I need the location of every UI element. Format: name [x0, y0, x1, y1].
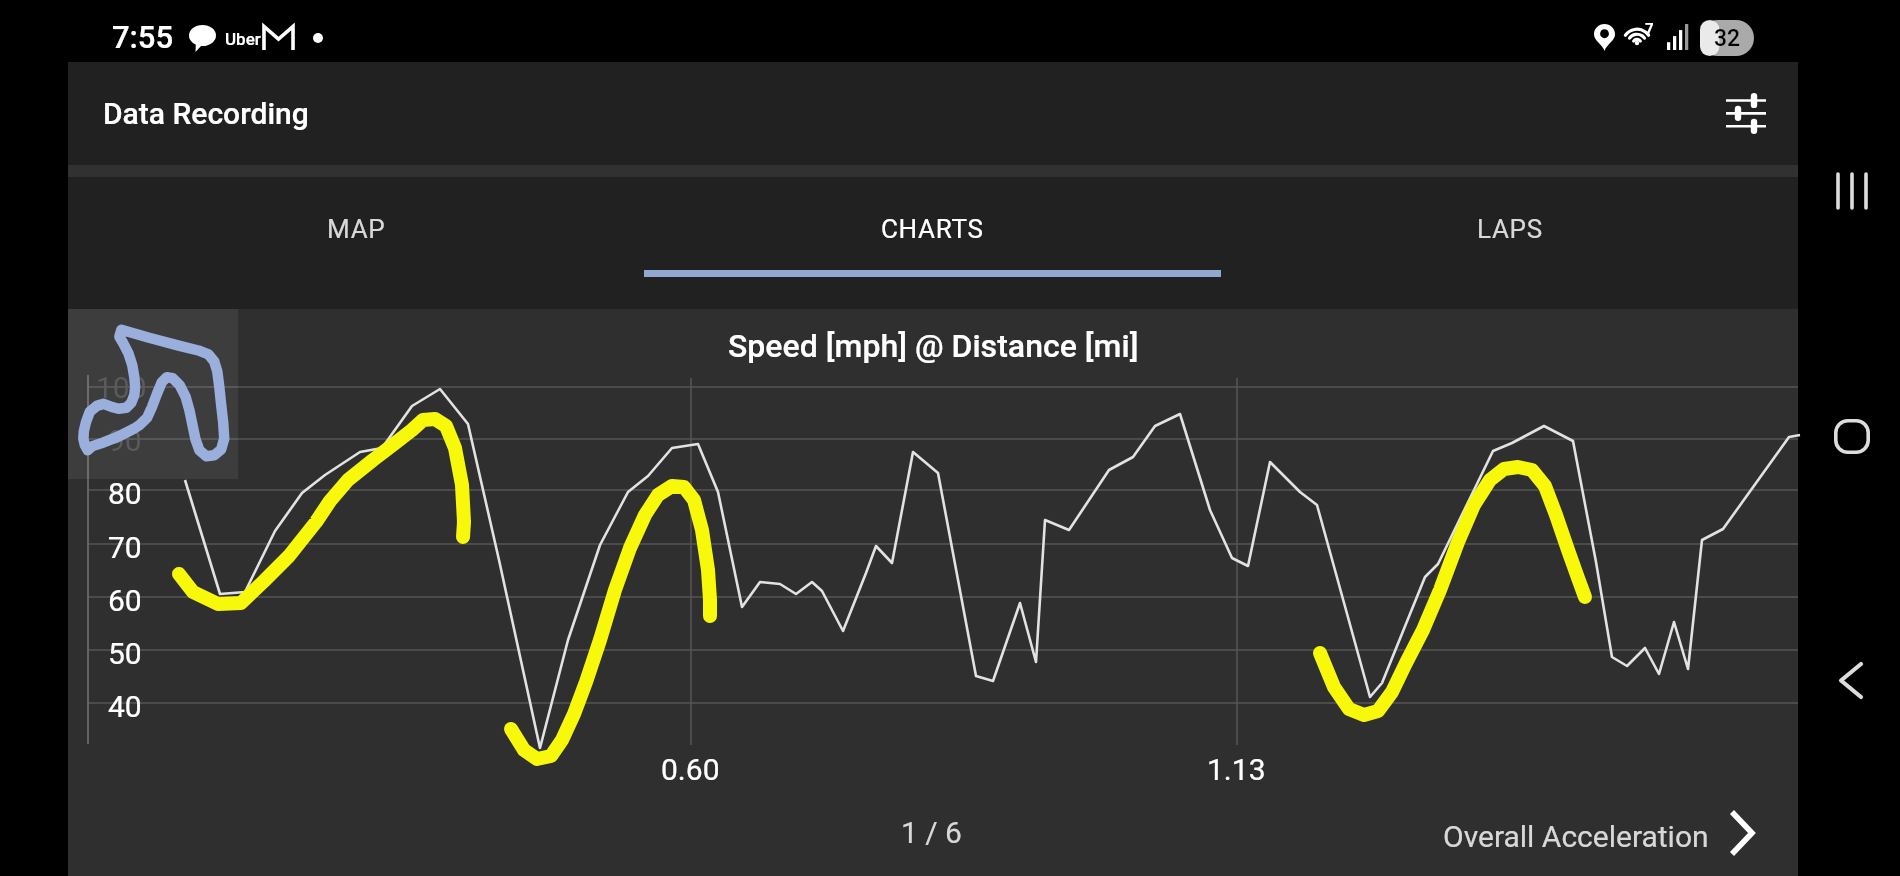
staticText: 60	[108, 583, 142, 618]
staticText: Uber	[225, 29, 261, 49]
staticText: 32	[1714, 25, 1741, 52]
staticText: 50	[108, 636, 142, 671]
staticText: Speed [mph] @ Distance [mi]	[728, 327, 1139, 365]
staticText: LAPS	[1477, 214, 1543, 244]
staticText: MAP	[327, 214, 386, 244]
button[interactable]: Back	[1824, 654, 1880, 710]
staticText: 1 / 6	[901, 815, 962, 850]
staticText: 40	[108, 689, 142, 724]
staticText: CHARTS	[881, 214, 984, 244]
staticText: 90	[108, 423, 142, 458]
button[interactable]: CHARTS	[644, 177, 1221, 309]
staticText: 70	[108, 530, 142, 565]
button[interactable]: Overall Acceleration	[1443, 811, 1755, 861]
button[interactable]: MAP	[68, 177, 644, 309]
staticText: 100	[96, 370, 147, 405]
staticText: Overall Acceleration	[1443, 819, 1709, 854]
button[interactable]: Recents	[1824, 164, 1880, 220]
staticText: 7	[1645, 20, 1654, 38]
staticText: Data Recording	[103, 96, 309, 131]
button[interactable]: Home	[1824, 408, 1880, 464]
staticText: 1.13	[1207, 752, 1266, 787]
staticText: 7:55	[112, 19, 174, 55]
button[interactable]: Chart settings	[1714, 82, 1786, 154]
staticText: 80	[108, 476, 142, 511]
staticText: 0.60	[661, 752, 720, 787]
button[interactable]: LAPS	[1221, 177, 1798, 309]
